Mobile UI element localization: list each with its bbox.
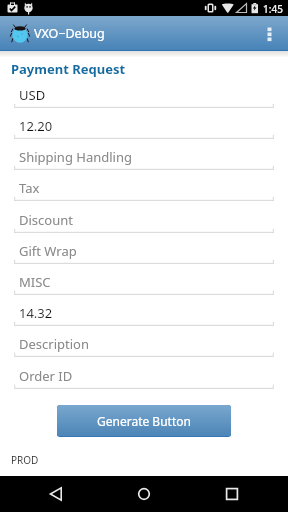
staticText: MISC [19,273,51,291]
staticText: Gift Wrap [19,242,77,260]
button[interactable]: USD [14,84,274,108]
staticText: VXO−Debug [34,25,105,42]
staticText: Tax [19,179,40,197]
staticText: 14.32 [19,304,53,322]
button[interactable]: More options [250,16,288,50]
button[interactable]: Home [124,476,164,512]
button[interactable]: Description [14,333,274,357]
staticText: 1:45 [263,2,283,16]
button[interactable]: Recents [212,476,252,512]
staticText: Description [19,335,89,353]
button[interactable]: Generate Button [57,405,231,437]
staticText: Order ID [19,367,73,385]
button[interactable]: Tax [14,177,274,201]
staticText: 12.20 [19,117,53,135]
button[interactable]: Order ID [14,365,274,389]
button[interactable]: 12.20 [14,115,274,139]
staticText: PROD [11,453,39,467]
staticText: Generate Button [97,413,191,429]
staticText: Discount [19,211,73,229]
staticText: Shipping Handling [19,148,132,166]
button[interactable]: Shipping Handling [14,146,274,170]
button[interactable]: Gift Wrap [14,240,274,264]
button[interactable]: Back [36,476,76,512]
button[interactable]: 14.32 [14,302,274,326]
staticText: USD [19,86,46,104]
button[interactable]: Discount [14,209,274,233]
button[interactable]: MISC [14,271,274,295]
staticText: Payment Request [11,60,126,78]
